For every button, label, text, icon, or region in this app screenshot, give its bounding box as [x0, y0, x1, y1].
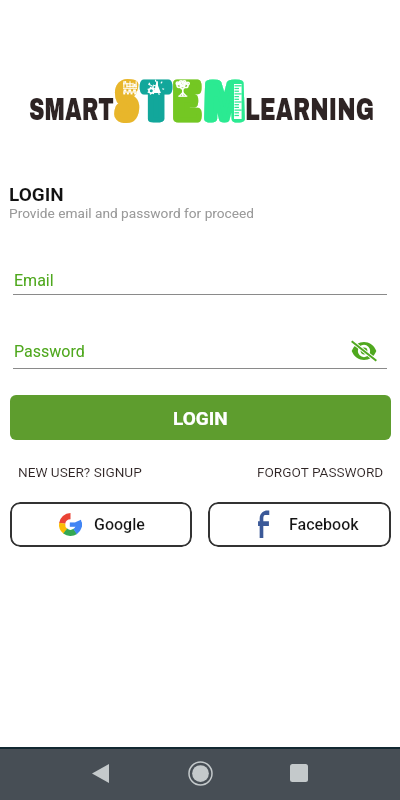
staticText: LOGIN	[173, 407, 228, 429]
staticText: LEARNING	[245, 93, 374, 127]
button[interactable]: Recent apps	[278, 752, 320, 794]
staticText: M	[204, 70, 245, 132]
staticText: T	[142, 70, 171, 132]
button[interactable]: Google	[10, 502, 192, 547]
button[interactable]: LOGIN	[10, 395, 391, 440]
staticText: Password	[14, 342, 85, 361]
staticText: S	[115, 70, 139, 132]
staticText: E	[173, 70, 202, 132]
button[interactable]: Facebook	[208, 502, 391, 547]
staticText: Google	[94, 515, 145, 534]
button[interactable]: Back	[79, 752, 121, 794]
staticText: Facebook	[289, 515, 359, 534]
staticText: S	[115, 70, 139, 132]
staticText: NEW USER? SIGNUP	[18, 464, 142, 480]
staticText: LOGIN	[9, 183, 64, 205]
button[interactable]: NEW USER? SIGNUP	[18, 464, 142, 480]
staticText: Provide email and password for proceed	[9, 205, 255, 221]
staticText: SMART	[29, 93, 114, 127]
staticText: FORGOT PASSWORD	[257, 464, 384, 480]
button[interactable]: Toggle password visibility	[350, 339, 378, 363]
staticText: Email	[14, 271, 54, 290]
button[interactable]: FORGOT PASSWORD	[257, 464, 384, 480]
staticText: E	[173, 70, 202, 132]
button[interactable]: Home	[179, 752, 221, 794]
staticText: T	[142, 70, 171, 132]
staticText: M	[204, 70, 245, 132]
